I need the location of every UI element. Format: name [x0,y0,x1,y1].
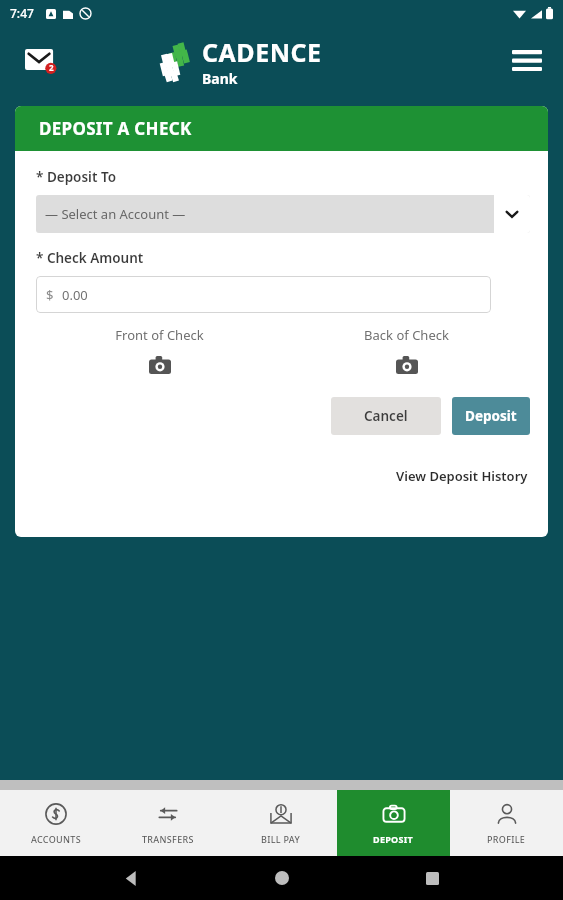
button[interactable]: Cancel [331,397,441,435]
button[interactable]: Front of Check [36,326,283,374]
button[interactable]: Menu [505,39,549,83]
button[interactable]: Home [262,858,302,898]
staticText: TRANSFERS [142,833,194,845]
staticText: BILL PAY [261,833,301,845]
staticText: Front of Check [115,326,204,344]
staticText: Cancel [364,407,408,425]
button[interactable]: BILL PAY [224,790,337,856]
staticText: 2 [49,62,54,73]
staticText: CADENCE [202,35,322,69]
button[interactable]: Deposit [452,397,530,435]
staticText: $ [46,286,54,304]
staticText: 0.00 [62,286,88,304]
staticText: DEPOSIT A CHECK [39,117,192,140]
button[interactable]: Back of Check [283,326,530,374]
button[interactable]: Messages, 2 unread [22,40,64,82]
staticText: PROFILE [487,833,526,845]
staticText: 7:47 [10,5,34,21]
button[interactable]: ACCOUNTS [0,790,112,856]
button[interactable]: — Select an Account — [36,195,530,233]
button[interactable]: View Deposit History [394,465,530,487]
staticText: View Deposit History [396,467,528,485]
button[interactable]: PROFILE [450,790,563,856]
button[interactable]: $ [36,276,491,313]
button[interactable]: DEPOSIT [337,790,450,856]
staticText: Deposit [465,407,517,425]
staticText: Back of Check [364,326,449,344]
button[interactable]: TRANSFERS [112,790,224,856]
staticText: DEPOSIT [373,833,414,845]
staticText: * Deposit To [36,168,116,186]
button[interactable]: Back [111,858,151,898]
button[interactable]: Recents [412,858,452,898]
staticText: Bank [202,69,238,88]
staticText: — Select an Account — [45,205,494,223]
staticText: ACCOUNTS [31,833,81,845]
staticText: * Check Amount [36,249,144,267]
